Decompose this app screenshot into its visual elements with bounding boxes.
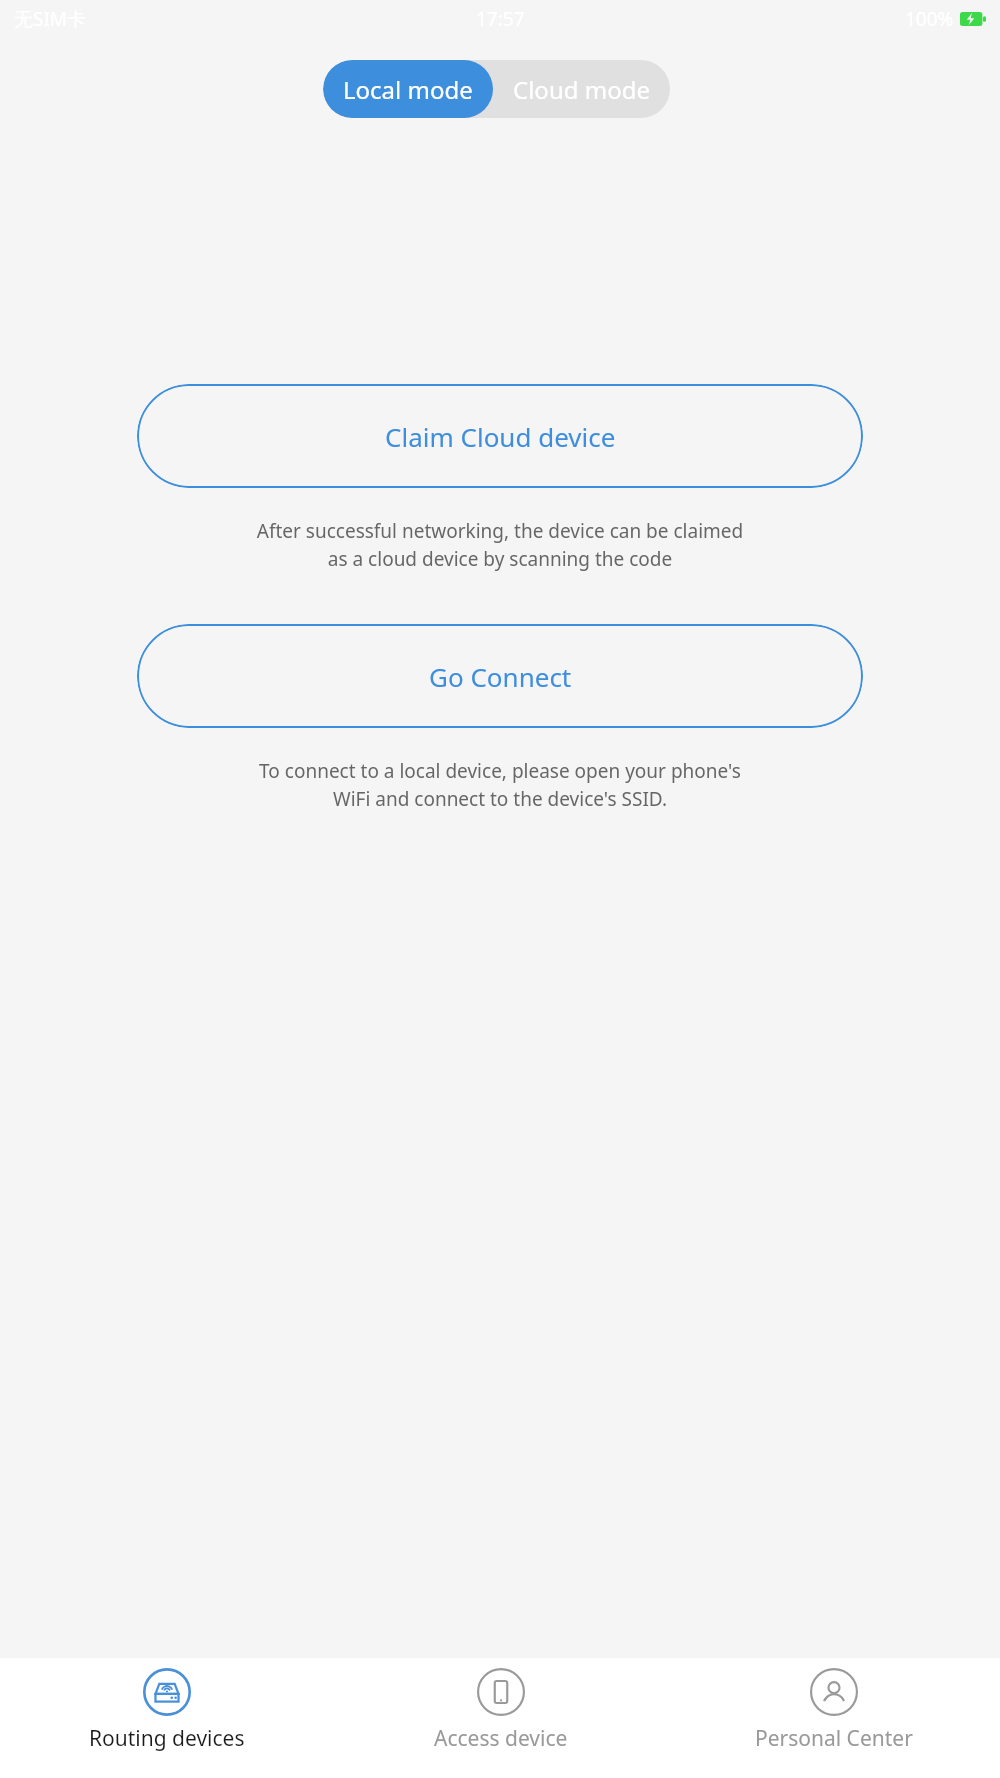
staticText: Local mode [343, 73, 473, 106]
button[interactable]: Cloud mode [493, 60, 670, 118]
staticText: 17:57 [476, 6, 525, 32]
button[interactable]: Go Connect [137, 624, 863, 728]
staticText: Routing devices [89, 1724, 245, 1753]
button[interactable]: Access device [334, 1658, 667, 1778]
staticText: Access device [434, 1724, 568, 1753]
staticText: After successful networking, the device … [0, 518, 1000, 572]
staticText: To connect to a local device, please ope… [0, 758, 1000, 812]
staticText: Personal Center [755, 1724, 913, 1753]
staticText: 无SIM卡 [14, 6, 87, 32]
staticText: 100% [905, 6, 954, 32]
button[interactable]: Personal Center [667, 1658, 1000, 1778]
staticText: Claim Cloud device [385, 419, 616, 454]
button[interactable]: Claim Cloud device [137, 384, 863, 488]
staticText: Go Connect [429, 659, 572, 694]
button[interactable]: Routing devices [0, 1658, 334, 1778]
staticText: Cloud mode [513, 73, 650, 106]
button[interactable]: Local mode [323, 60, 493, 118]
